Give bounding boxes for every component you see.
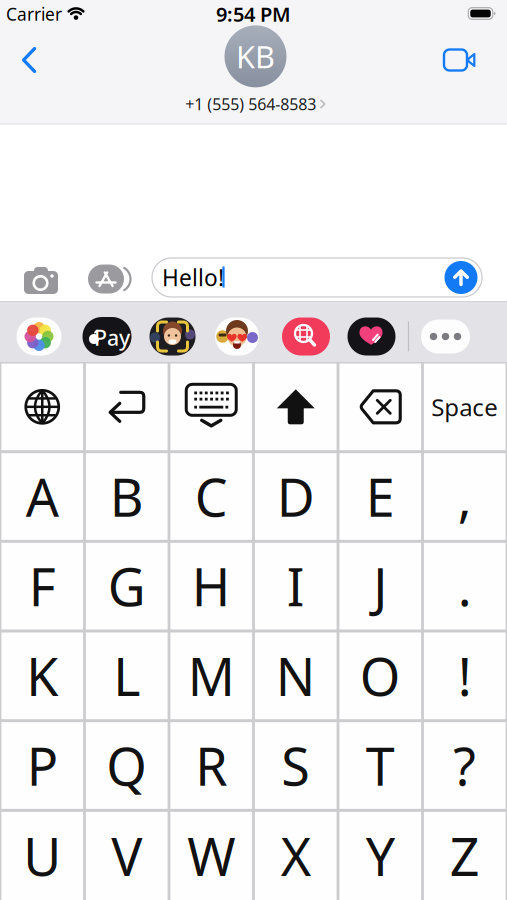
button[interactable]: C	[170, 453, 252, 540]
button[interactable]: K	[1, 632, 83, 719]
staticText: P	[27, 731, 58, 800]
staticText: Z	[450, 821, 480, 890]
staticText: X	[281, 821, 311, 890]
staticText: B	[110, 462, 144, 531]
button[interactable]: ?	[424, 722, 506, 809]
staticText: A	[26, 462, 59, 531]
staticText: C	[195, 462, 228, 531]
staticText: K	[26, 641, 58, 710]
button[interactable]: L	[86, 632, 168, 719]
staticText: Q	[106, 731, 147, 800]
button[interactable]: FaceTime	[437, 43, 483, 76]
staticText: E	[366, 462, 395, 531]
staticText: I	[287, 552, 305, 621]
staticText: M	[188, 641, 235, 710]
staticText: .	[458, 552, 472, 621]
button[interactable]: ,	[424, 453, 506, 540]
button[interactable]: J	[339, 543, 421, 629]
staticText: Hello!	[162, 262, 224, 292]
button[interactable]: P	[1, 722, 83, 809]
button[interactable]: Return	[86, 363, 168, 450]
button[interactable]: V	[86, 812, 168, 900]
staticText: W	[187, 821, 235, 890]
staticText: N	[276, 641, 316, 710]
button[interactable]: Send	[444, 261, 477, 294]
button[interactable]: G	[86, 543, 168, 629]
button[interactable]: Y	[339, 812, 421, 900]
button[interactable]: B	[86, 453, 168, 540]
button[interactable]: T	[339, 722, 421, 809]
button[interactable]: Q	[86, 722, 168, 809]
button[interactable]: .	[424, 543, 506, 629]
staticText: !	[458, 641, 472, 710]
button[interactable]: M	[170, 632, 252, 719]
staticText: O	[360, 641, 401, 710]
button[interactable]: Message field	[152, 258, 482, 297]
staticText: Space	[431, 391, 498, 423]
staticText: Pay	[94, 323, 130, 352]
button[interactable]: X	[255, 812, 337, 900]
staticText: F	[29, 552, 56, 621]
staticText: S	[281, 731, 310, 800]
button[interactable]: Camera	[17, 260, 64, 300]
button[interactable]: Next language	[1, 363, 83, 450]
button[interactable]: Z	[424, 812, 506, 900]
button[interactable]: F	[1, 543, 83, 629]
button[interactable]: Apps	[82, 258, 134, 299]
button[interactable]: N	[255, 632, 337, 719]
staticText: U	[23, 821, 61, 890]
button[interactable]: E	[339, 453, 421, 540]
staticText: L	[113, 641, 140, 710]
button[interactable]: Memoji Stickers	[215, 317, 259, 355]
button[interactable]: R	[170, 722, 252, 809]
button[interactable]: D	[255, 453, 337, 540]
staticText: +1 (555) 564-8583	[185, 93, 316, 115]
staticText: H	[192, 552, 231, 621]
button[interactable]: W	[170, 812, 252, 900]
button[interactable]: Contact KB	[185, 25, 326, 115]
staticText: Y	[366, 821, 395, 890]
staticText: Carrier	[6, 2, 62, 25]
staticText: ,	[458, 462, 472, 531]
button[interactable]: O	[339, 632, 421, 719]
button[interactable]: Delete	[339, 363, 421, 450]
button[interactable]: Space	[424, 363, 506, 450]
button[interactable]: I	[255, 543, 337, 629]
staticText: D	[277, 462, 315, 531]
button[interactable]: Shift	[255, 363, 337, 450]
button[interactable]: !	[424, 632, 506, 719]
button[interactable]: Back	[14, 39, 45, 81]
staticText: 9:54 PM	[216, 1, 291, 27]
button[interactable]: Hide keyboard	[170, 363, 252, 450]
button[interactable]: Digital Touch	[347, 317, 395, 355]
button[interactable]: Images search	[282, 317, 330, 355]
button[interactable]: More apps	[421, 319, 470, 353]
staticText: ?	[453, 731, 476, 800]
button[interactable]: S	[255, 722, 337, 809]
staticText: R	[195, 731, 227, 800]
button[interactable]: Memoji	[149, 317, 195, 355]
button[interactable]: A	[1, 453, 83, 540]
staticText: KB	[236, 36, 275, 77]
staticText: T	[366, 731, 395, 800]
staticText: G	[108, 552, 146, 621]
staticText: J	[373, 552, 387, 621]
button[interactable]: Photos	[16, 317, 61, 355]
button[interactable]: Apple Pay	[82, 317, 131, 356]
button[interactable]: U	[1, 812, 83, 900]
button[interactable]: H	[170, 543, 252, 629]
staticText: V	[111, 821, 142, 890]
